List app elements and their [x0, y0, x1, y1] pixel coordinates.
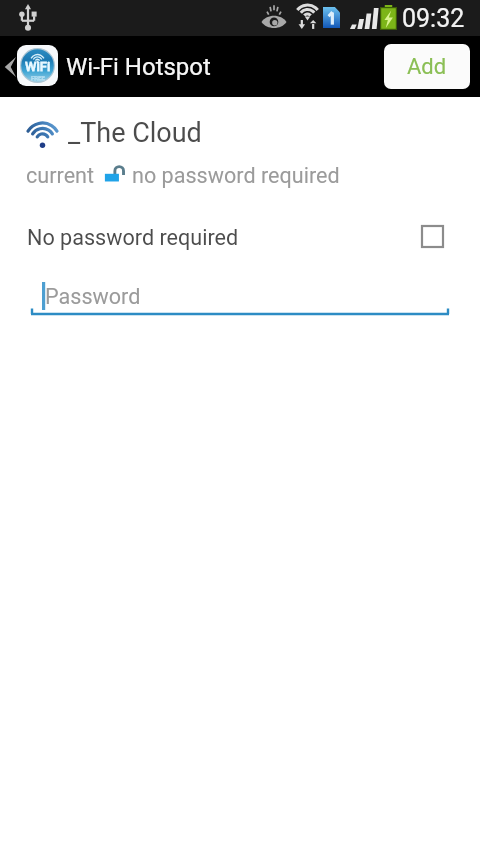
staticText: _The Cloud	[68, 117, 202, 149]
staticText: current	[26, 163, 95, 188]
staticText: no password required	[132, 163, 340, 188]
staticText: No password required	[27, 225, 239, 250]
staticText: 09:32	[402, 4, 465, 33]
staticText: WiFi	[25, 59, 51, 74]
staticText: Add	[407, 54, 447, 80]
button[interactable]: Password	[0, 280, 480, 328]
staticText: Wi-Fi Hotspot	[66, 53, 211, 81]
other: Navigate up	[4, 57, 16, 77]
button[interactable]: Add	[384, 44, 470, 89]
staticText: FREE	[31, 74, 45, 81]
staticText: Password	[45, 284, 141, 309]
button[interactable]: Navigate up	[0, 36, 480, 97]
button[interactable]: No password required	[0, 215, 480, 259]
